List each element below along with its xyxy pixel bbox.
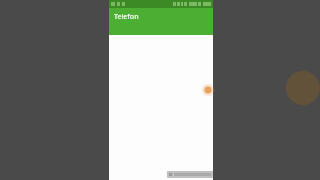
staticText: Telefon xyxy=(114,12,139,22)
other: Touch indicator xyxy=(201,83,215,97)
button[interactable] xyxy=(167,171,213,178)
button[interactable]: Telefon xyxy=(109,8,213,35)
